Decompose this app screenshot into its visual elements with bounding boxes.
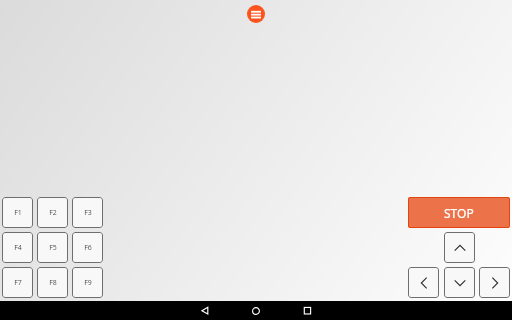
button[interactable]: F5 bbox=[37, 232, 68, 263]
staticText: F5 bbox=[49, 243, 57, 253]
button[interactable]: Home bbox=[239, 301, 273, 320]
staticText: STOP bbox=[444, 205, 474, 221]
button[interactable]: Left bbox=[408, 267, 439, 298]
staticText: F6 bbox=[84, 243, 92, 253]
button[interactable]: Down bbox=[444, 267, 475, 298]
button[interactable]: F2 bbox=[37, 197, 68, 228]
button[interactable]: Right bbox=[479, 267, 510, 298]
button[interactable]: F9 bbox=[72, 267, 103, 298]
button[interactable]: F3 bbox=[72, 197, 103, 228]
button[interactable]: F6 bbox=[72, 232, 103, 263]
button[interactable]: F4 bbox=[2, 232, 33, 263]
staticText: F7 bbox=[14, 278, 22, 288]
staticText: F9 bbox=[84, 278, 92, 288]
staticText: F8 bbox=[49, 278, 57, 288]
staticText: F3 bbox=[84, 208, 92, 218]
button[interactable]: Recent apps bbox=[290, 301, 324, 320]
button[interactable]: F8 bbox=[37, 267, 68, 298]
button[interactable]: STOP bbox=[408, 197, 510, 228]
staticText: F1 bbox=[14, 208, 22, 218]
button[interactable]: F7 bbox=[2, 267, 33, 298]
button[interactable]: F1 bbox=[2, 197, 33, 228]
staticText: F4 bbox=[14, 243, 22, 253]
button[interactable]: Menu bbox=[247, 5, 265, 23]
staticText: F2 bbox=[49, 208, 57, 218]
button[interactable]: Up bbox=[444, 232, 475, 263]
button[interactable]: Back bbox=[188, 301, 222, 320]
